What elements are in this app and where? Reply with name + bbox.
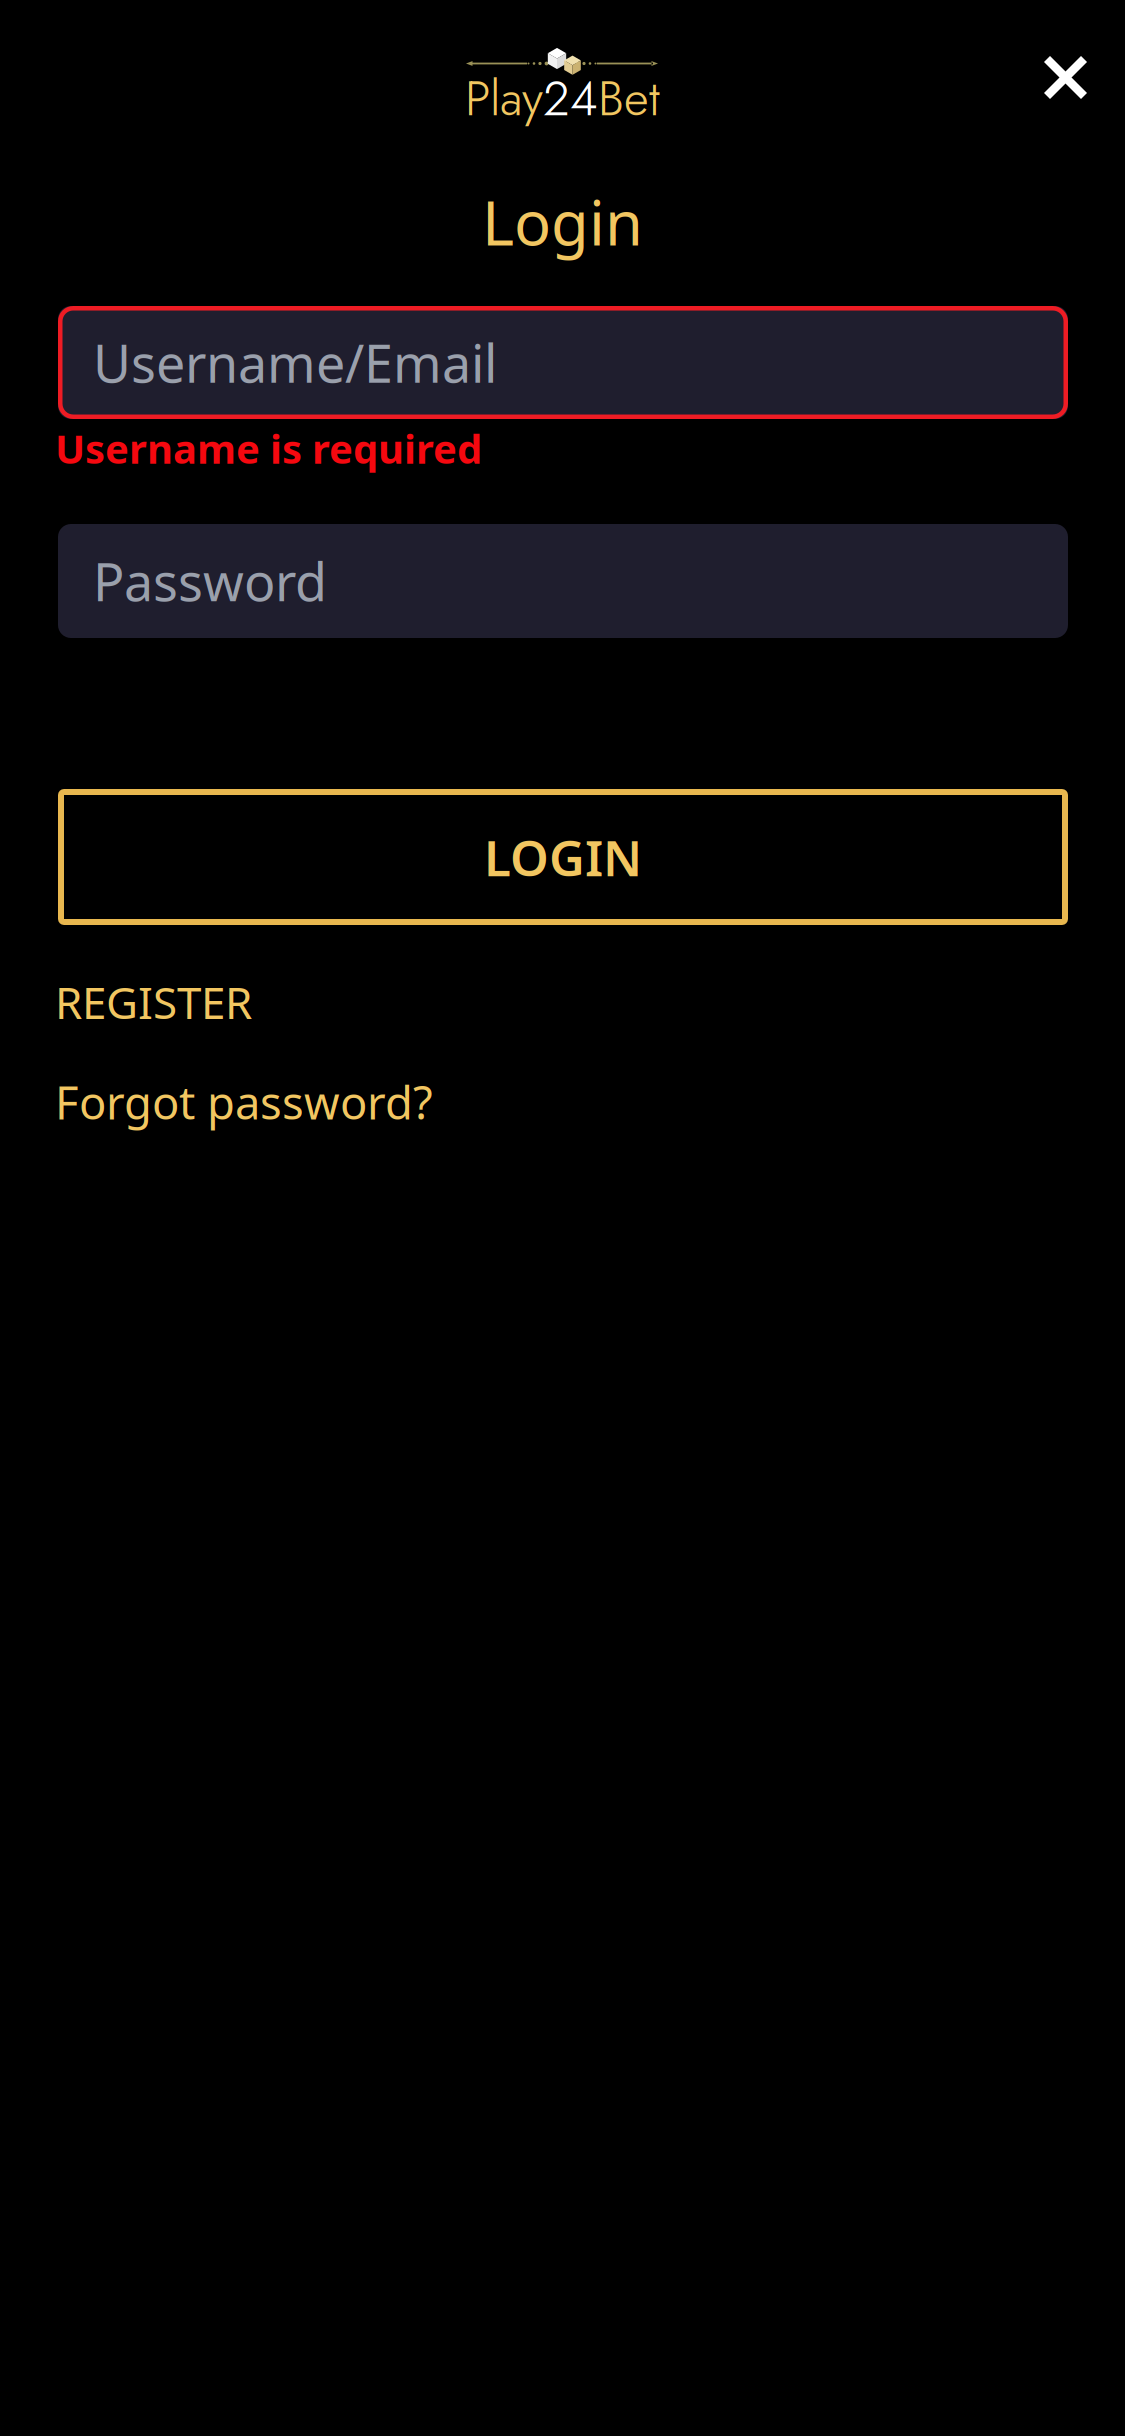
staticText: Username is required bbox=[55, 421, 482, 475]
button[interactable]: REGISTER bbox=[55, 972, 252, 1032]
button[interactable]: LOGIN bbox=[58, 789, 1068, 925]
button[interactable]: Close bbox=[1016, 28, 1115, 127]
button[interactable]: Username/Email bbox=[58, 306, 1068, 419]
staticText: Login bbox=[482, 180, 643, 263]
staticText: Forgot password? bbox=[55, 1071, 433, 1133]
staticText: REGISTER bbox=[55, 972, 252, 1032]
staticText: LOGIN bbox=[484, 823, 642, 891]
staticText: Play bbox=[465, 64, 543, 133]
staticText: Username/Email bbox=[93, 327, 497, 398]
staticText: 24 bbox=[543, 64, 598, 133]
staticText: Bet bbox=[598, 64, 660, 133]
staticText: Password bbox=[93, 546, 327, 616]
button[interactable]: Password bbox=[58, 524, 1068, 638]
button[interactable]: Forgot password? bbox=[55, 1071, 433, 1133]
